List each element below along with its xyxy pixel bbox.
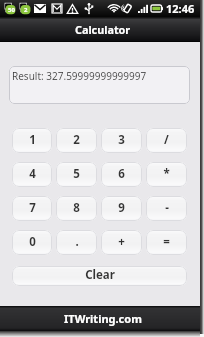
- button[interactable]: =: [146, 230, 187, 255]
- button[interactable]: *: [146, 162, 187, 187]
- staticText: +: [118, 234, 125, 250]
- button[interactable]: Clear: [12, 266, 187, 286]
- button[interactable]: 5: [56, 162, 97, 187]
- button[interactable]: 7: [12, 196, 52, 221]
- button[interactable]: 8: [56, 196, 97, 221]
- staticText: Result: 327.59999999999997: [12, 69, 147, 83]
- button[interactable]: /: [146, 128, 187, 153]
- staticText: =: [163, 234, 170, 250]
- staticText: 50: [8, 6, 15, 14]
- button[interactable]: 6: [101, 162, 142, 187]
- button[interactable]: -: [146, 196, 187, 221]
- staticText: *: [163, 166, 170, 182]
- staticText: 12:46: [166, 1, 195, 16]
- staticText: 6: [118, 166, 125, 182]
- button[interactable]: .: [56, 230, 97, 255]
- staticText: 2: [73, 132, 80, 148]
- staticText: /: [164, 132, 169, 148]
- staticText: 9: [118, 200, 125, 216]
- button[interactable]: +: [101, 230, 142, 255]
- staticText: 1: [29, 132, 36, 148]
- staticText: 5: [73, 166, 80, 182]
- staticText: 0: [29, 234, 36, 250]
- staticText: 2: [24, 6, 28, 14]
- staticText: 7: [29, 200, 36, 216]
- staticText: .: [75, 234, 79, 250]
- staticText: ITWriting.com: [64, 311, 142, 326]
- button[interactable]: 4: [12, 162, 52, 187]
- staticText: -: [165, 200, 169, 216]
- staticText: 8: [73, 200, 80, 216]
- button[interactable]: 0: [12, 230, 52, 255]
- staticText: Calculator: [75, 22, 131, 37]
- staticText: 3: [118, 132, 125, 148]
- staticText: Clear: [85, 267, 115, 283]
- button[interactable]: 3: [101, 128, 142, 153]
- button[interactable]: 2: [56, 128, 97, 153]
- button[interactable]: 1: [12, 128, 52, 153]
- staticText: 4: [29, 166, 36, 182]
- button[interactable]: 9: [101, 196, 142, 221]
